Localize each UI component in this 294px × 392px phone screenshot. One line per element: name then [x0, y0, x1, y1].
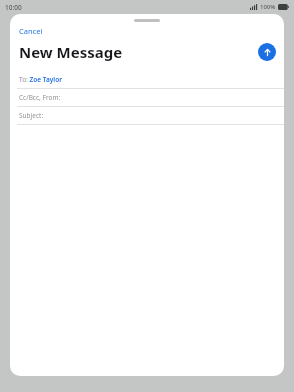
button[interactable]: Subject:: [10, 107, 284, 125]
staticText: 100%: [260, 3, 276, 11]
button[interactable]: Cc/Bcc, From:: [10, 89, 284, 107]
staticText: Subject:: [19, 111, 44, 120]
staticText: New Message: [19, 42, 123, 62]
button[interactable]: Send: [258, 43, 276, 61]
button[interactable]: To: Zoe Taylor: [10, 71, 284, 89]
staticText: Cc/Bcc, From:: [19, 93, 61, 102]
staticText: 10:00: [5, 3, 22, 12]
staticText: Cancel: [19, 26, 43, 36]
button[interactable]: Cancel: [17, 25, 45, 37]
staticText: To: Zoe Taylor: [19, 75, 62, 84]
